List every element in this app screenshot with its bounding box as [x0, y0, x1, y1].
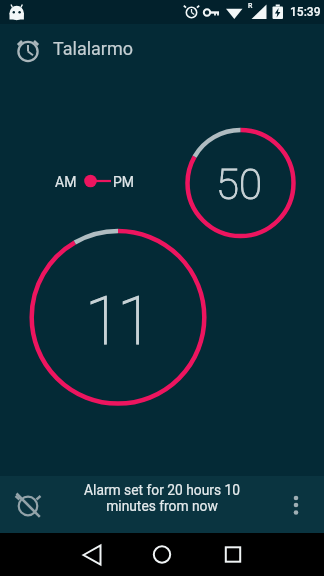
button[interactable]: 11 [23, 222, 213, 412]
staticText: 50 [216, 160, 262, 209]
staticText: 11 [85, 283, 150, 360]
button[interactable]: 50 [180, 123, 301, 244]
button[interactable] [138, 533, 186, 576]
staticText: Talalarmo [53, 38, 134, 59]
staticText: Alarm set for 20 hours 10 minutes from n… [84, 482, 240, 514]
button[interactable] [209, 533, 257, 576]
staticText: PM [113, 174, 135, 190]
staticText: 50 [216, 160, 262, 209]
staticText: R [248, 2, 253, 10]
button[interactable] [8, 485, 48, 525]
button[interactable] [280, 482, 312, 527]
button[interactable]: AM [50, 167, 142, 195]
staticText: 15:39 [290, 5, 321, 19]
staticText: 11 [85, 283, 150, 360]
button[interactable] [68, 533, 116, 576]
staticText: AM [55, 174, 77, 190]
button[interactable] [0, 24, 48, 72]
